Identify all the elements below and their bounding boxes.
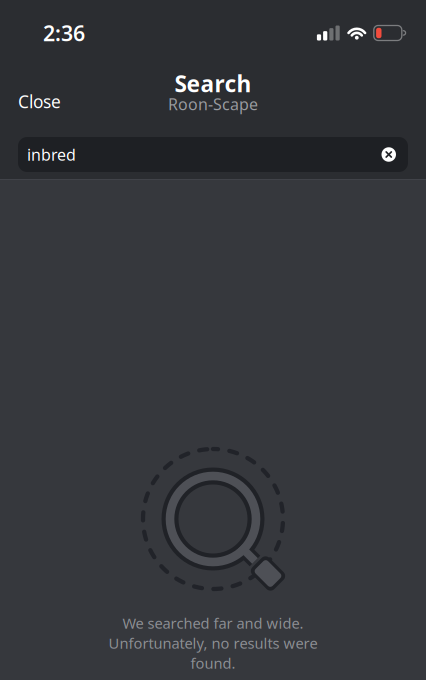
staticText: We searched far and wide. [122,613,303,633]
staticText: Search [174,68,251,98]
button[interactable]: Clear search text [371,137,408,172]
staticText: found. [190,653,235,673]
staticText: Unfortunately, no results were [108,633,317,653]
staticText: 2:36 [43,19,85,47]
staticText: inbred [27,144,76,165]
staticText: Roon-Scape [168,93,258,115]
staticText: Close [18,90,61,113]
button[interactable]: Close [0,80,79,122]
